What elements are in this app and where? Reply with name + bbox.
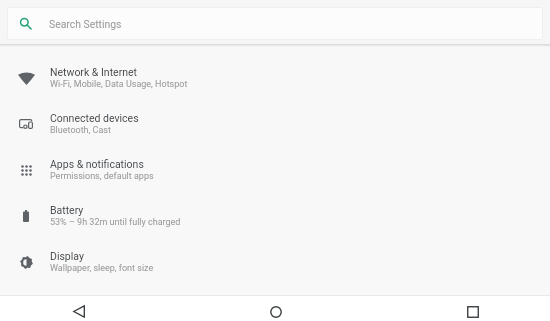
staticText: Permissions, default apps bbox=[50, 171, 154, 182]
staticText: Battery bbox=[50, 204, 84, 216]
button[interactable]: Apps & notifications bbox=[0, 147, 550, 193]
staticText: Apps & notifications bbox=[50, 158, 144, 170]
button[interactable]: Battery bbox=[0, 193, 550, 239]
button[interactable]: Network & Internet bbox=[0, 55, 550, 101]
staticText: Connected devices bbox=[50, 112, 139, 124]
staticText: 53% – 9h 32m until fully charged bbox=[50, 217, 181, 228]
staticText: Display bbox=[50, 250, 84, 262]
button[interactable]: Search Settings bbox=[7, 7, 543, 40]
staticText: Search Settings bbox=[49, 18, 122, 30]
staticText: Bluetooth, Cast bbox=[50, 125, 111, 136]
staticText: Wi-Fi, Mobile, Data Usage, Hotspot bbox=[50, 79, 188, 90]
staticText: Network & Internet bbox=[50, 66, 138, 78]
button[interactable]: Back bbox=[18, 296, 140, 321]
button[interactable]: Display bbox=[0, 239, 550, 285]
staticText: Wallpaper, sleep, font size bbox=[50, 263, 154, 274]
button[interactable]: Home bbox=[215, 296, 337, 321]
button[interactable]: Recents bbox=[412, 296, 534, 321]
button[interactable]: Connected devices bbox=[0, 101, 550, 147]
